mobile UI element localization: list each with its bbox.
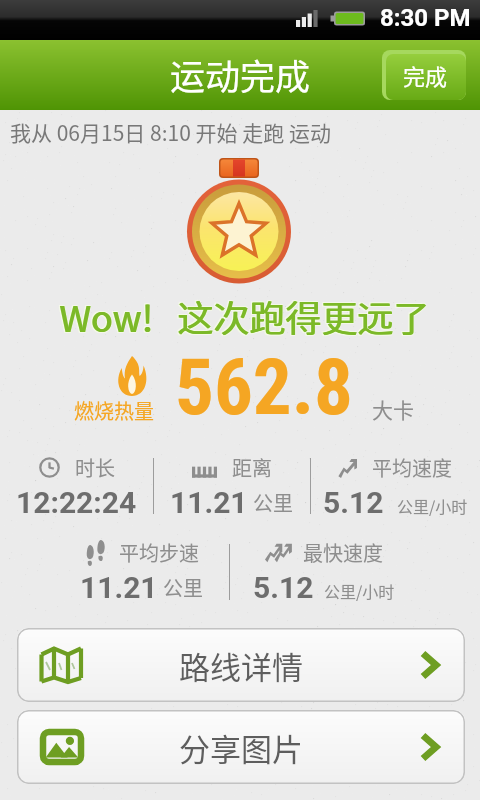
staticText: 公里 [253,488,293,517]
staticText: 11.21 [170,485,248,520]
staticText: 完成 [403,59,448,91]
staticText: 这次跑得更远了 [178,291,431,343]
button[interactable]: 完成 [382,50,466,100]
staticText: 燃烧热量 [74,396,154,425]
staticText: 这次跑得更远了 [176,291,429,343]
staticText: 公里/小时 [324,579,395,602]
staticText: 大卡 [372,394,414,424]
staticText: 11.21 [80,570,158,605]
staticText: Wow! [60,291,154,343]
staticText: 公里 [163,573,203,602]
staticText: Wow! [59,290,153,342]
staticText: 562.8 [175,343,354,433]
staticText: 8:30 PM [380,4,471,32]
staticText: Wow! [60,290,154,342]
staticText: 时长 [75,453,115,482]
staticText: 路线详情 [179,643,303,688]
button[interactable]: Share picture [17,710,465,784]
staticText: Wow! [60,289,154,341]
staticText: 平均速度 [372,453,452,482]
staticText: 最快速度 [303,538,383,567]
staticText: 5.12 [323,485,384,520]
staticText: 运动完成 [170,49,311,100]
button[interactable]: Route details [17,628,465,702]
staticText: 这次跑得更远了 [177,290,430,342]
staticText: 我从 06月15日 8:10 开始 走跑 运动 [10,117,331,147]
staticText: 距离 [232,453,272,482]
staticText: 这次跑得更远了 [178,290,431,342]
staticText: 5.12 [253,570,314,605]
staticText: Wow! [58,291,152,343]
staticText: Wow! [58,289,152,341]
staticText: 分享图片 [179,725,303,770]
staticText: 这次跑得更远了 [178,289,431,341]
staticText: 平均步速 [119,538,199,567]
staticText: 这次跑得更远了 [176,289,429,341]
staticText: 公里/小时 [397,494,468,517]
staticText: 12:22:24 [16,485,137,520]
